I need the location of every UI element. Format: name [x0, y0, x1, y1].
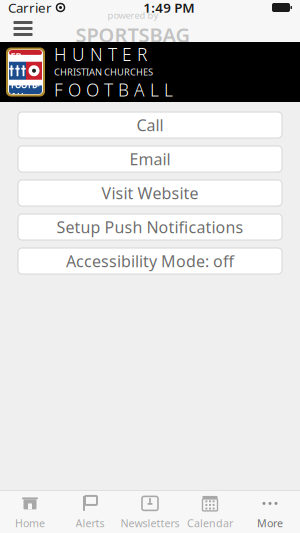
button[interactable]: Calendar — [180, 491, 240, 533]
staticText: Email — [129, 148, 170, 170]
button[interactable]: Accessibility Mode: off — [18, 248, 282, 274]
staticText: Home — [15, 516, 45, 530]
button[interactable]: Visit Website — [18, 180, 282, 206]
staticText: Setup Push Notifications — [56, 216, 243, 238]
button[interactable]: Home — [0, 491, 60, 533]
button[interactable]: Menu — [6, 15, 40, 42]
staticText: Call — [136, 114, 163, 136]
staticText: Accessibility Mode: off — [66, 250, 234, 272]
staticText: CHRISTIAN CHURCHES — [54, 66, 153, 78]
staticText: 1:49 PM — [143, 0, 194, 16]
staticText: Carrier — [8, 0, 52, 16]
button[interactable]: Alerts — [60, 491, 120, 533]
staticText: FOOTBALL — [11, 80, 40, 101]
staticText: H U N T E R — [54, 43, 147, 66]
button[interactable]: More — [240, 491, 300, 533]
staticText: SPORTSBAG — [75, 21, 190, 48]
button[interactable]: Setup Push Notifications — [18, 214, 282, 240]
button[interactable]: Newsletters — [120, 491, 180, 533]
staticText: Newsletters — [120, 516, 179, 530]
staticText: Calendar — [187, 516, 233, 530]
staticText: F O O T B A L L — [54, 78, 173, 101]
staticText: Alerts — [75, 516, 104, 530]
staticText: HUNTER — [10, 37, 40, 62]
button[interactable]: Call — [18, 112, 282, 138]
staticText: ★ ★ ★ — [16, 101, 35, 107]
staticText: powered by — [107, 9, 158, 21]
staticText: More — [257, 516, 283, 530]
button[interactable]: Email — [18, 146, 282, 172]
staticText: Visit Website — [101, 182, 198, 204]
